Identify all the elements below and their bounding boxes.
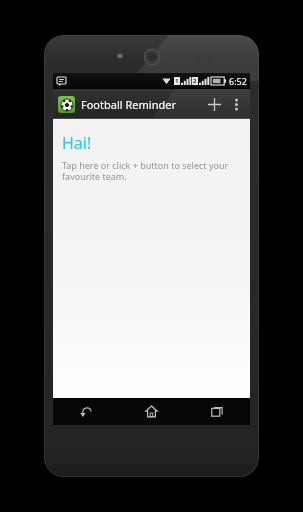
button[interactable]: App icon — [58, 96, 75, 113]
staticText: Hai! — [62, 132, 92, 154]
button[interactable]: More options — [227, 89, 245, 119]
staticText: Tap here or click + button to select you… — [62, 159, 236, 183]
staticText: 6:52 — [229, 75, 247, 87]
button[interactable]: Recent apps — [184, 398, 250, 425]
button[interactable]: Hai! — [53, 119, 250, 398]
staticText: Football Reminder — [81, 97, 176, 112]
button[interactable]: Back — [53, 398, 118, 425]
button[interactable]: Home — [118, 398, 184, 425]
button[interactable]: Add team — [201, 89, 227, 119]
staticText: 2 — [193, 77, 197, 85]
staticText: 1 — [175, 77, 179, 85]
